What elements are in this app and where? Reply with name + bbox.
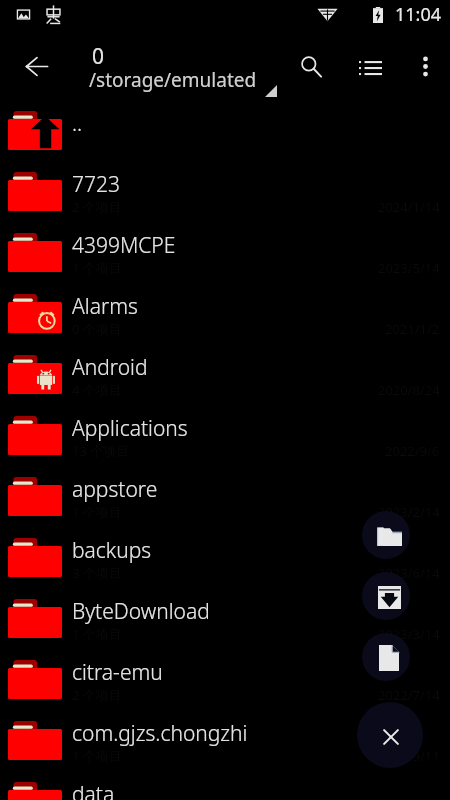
button[interactable]: appstore [0, 466, 450, 527]
button[interactable]: Applications [0, 405, 450, 466]
staticText: 2023/9/11 [378, 747, 440, 765]
staticText: 2023/3/14 [378, 625, 440, 643]
staticText: .. [72, 109, 83, 138]
button[interactable]: Back [13, 43, 60, 90]
staticText: Android [72, 353, 148, 382]
staticText: Applications [72, 414, 188, 443]
staticText: 2023/6/14 [378, 564, 440, 582]
staticText: 2022/7/14 [378, 686, 440, 704]
staticText: backups [72, 536, 152, 565]
button[interactable]: ByteDownload [0, 588, 450, 649]
button[interactable]: 4399MCPE [0, 222, 450, 283]
staticText: ByteDownload [72, 597, 210, 626]
staticText: com.gjzs.chongzhi [72, 719, 248, 748]
staticText: 4399MCPE [72, 231, 176, 260]
button[interactable]: Extract archive [362, 572, 410, 620]
button[interactable]: Search [288, 44, 333, 89]
button[interactable]: 7723 [0, 161, 450, 222]
staticText: citra-emu [72, 658, 163, 687]
button[interactable]: View mode [348, 44, 393, 89]
button[interactable]: Android [0, 344, 450, 405]
staticText: 11:04 [395, 2, 442, 27]
button[interactable]: Close menu [357, 702, 423, 768]
staticText: 2023/2/14 [378, 503, 440, 521]
staticText: 0 [92, 42, 105, 71]
staticText: Alarms [72, 292, 138, 321]
staticText: appstore [72, 475, 158, 504]
button[interactable]: citra-emu [0, 649, 450, 710]
button[interactable]: com.gjzs.chongzhi [0, 710, 450, 771]
button[interactable]: More options [403, 44, 448, 89]
button[interactable]: New file [362, 633, 410, 681]
button[interactable]: .. [0, 100, 450, 161]
staticText: /storage/emulated [89, 67, 257, 93]
button[interactable]: New folder [362, 511, 410, 559]
button[interactable]: data [0, 771, 450, 800]
staticText: 7723 [72, 170, 120, 199]
button[interactable]: backups [0, 527, 450, 588]
button[interactable]: Alarms [0, 283, 450, 344]
staticText: data [72, 780, 115, 800]
